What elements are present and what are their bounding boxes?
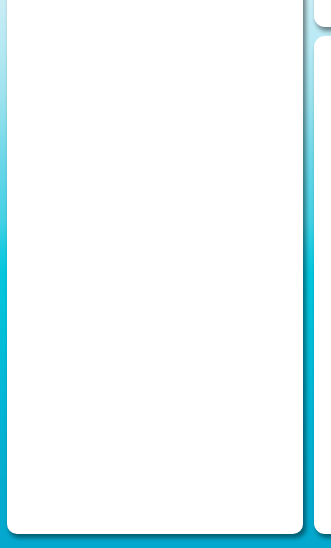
button[interactable]: Previous card xyxy=(314,0,331,27)
button[interactable]: Next card xyxy=(314,36,331,534)
button[interactable]: Card xyxy=(7,0,303,534)
